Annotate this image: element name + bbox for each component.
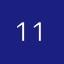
button[interactable]: 11 xyxy=(0,0,64,64)
